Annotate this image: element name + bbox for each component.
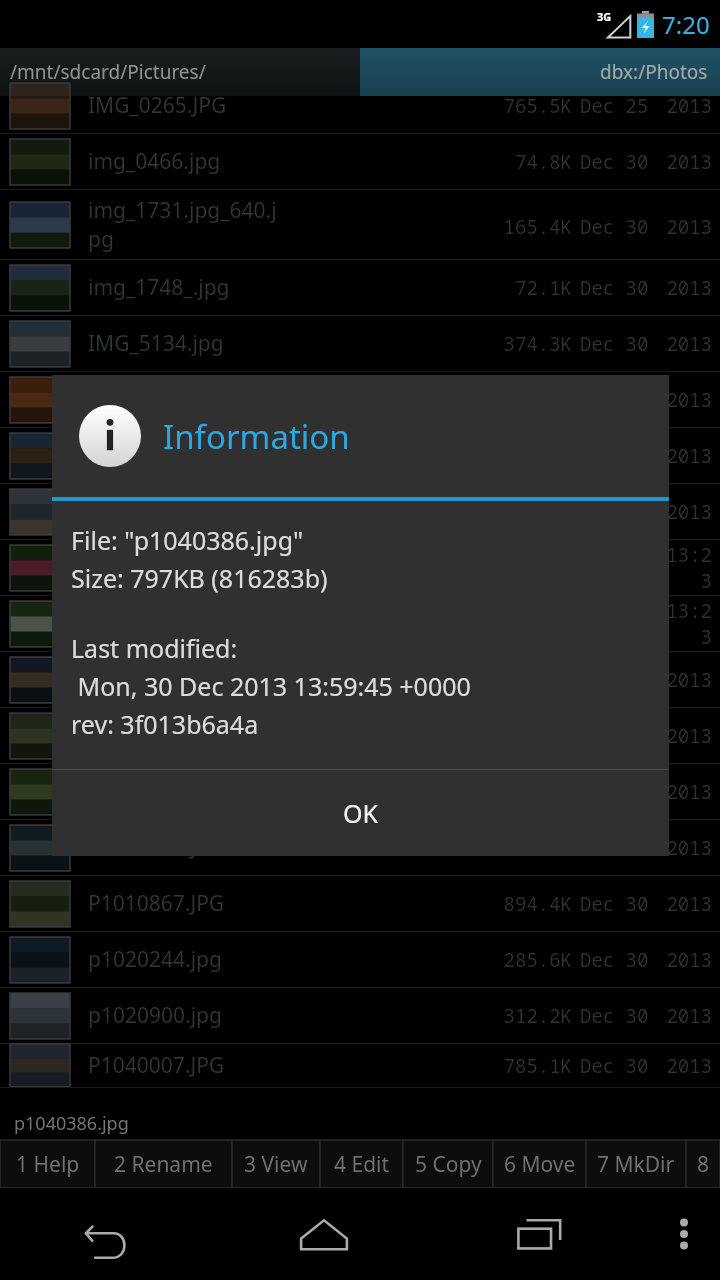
staticText: P1010867.JPG (88, 889, 225, 918)
button[interactable]: P1000456.JPG (0, 708, 720, 763)
button[interactable]: 6 Move (493, 1140, 586, 1188)
staticText: IMG_5522.jpg (88, 553, 224, 582)
staticText: Dec 30 (580, 214, 654, 240)
staticText: 6 Move (504, 1150, 576, 1179)
button[interactable]: Home (216, 1188, 432, 1280)
staticText: 2013 (658, 947, 712, 973)
staticText: Information (163, 414, 350, 459)
button[interactable]: 5 Copy (403, 1140, 493, 1188)
staticText: 13:23 (658, 598, 712, 650)
staticText: 165.4K (488, 214, 572, 240)
button[interactable]: 1 Help (0, 1140, 95, 1188)
button[interactable]: OK (52, 770, 669, 856)
button[interactable]: IMG_5134.jpg (0, 316, 720, 371)
staticText: 2013 (658, 275, 712, 301)
staticText: P1001011.JPG (88, 833, 225, 862)
button[interactable]: IMG_5522.jpg (0, 540, 720, 595)
staticText: Dec 30 (580, 947, 654, 973)
staticText: 72.1K (488, 275, 572, 301)
staticText: img_1748_.jpg (88, 273, 230, 302)
staticText: P1000456.JPG (88, 721, 225, 750)
staticText: 7 MkDir (597, 1150, 675, 1179)
staticText: 2013 (658, 723, 712, 749)
button[interactable]: P1000789.JPG (0, 764, 720, 819)
staticText: rev: 3f013b6a4a (71, 707, 259, 741)
button[interactable]: IMG_5216.jpg (0, 372, 720, 427)
staticText: 2013 (658, 891, 712, 917)
button[interactable]: IMG_5610.jpg (0, 596, 720, 651)
button[interactable]: 7 MkDir (586, 1140, 686, 1188)
staticText: 765.5K (488, 93, 572, 119)
staticText: Last modified: (71, 631, 238, 665)
staticText: 2013 (658, 443, 712, 469)
staticText: 2013 (658, 499, 712, 525)
staticText: 2013 (658, 149, 712, 175)
button[interactable]: Back (0, 1188, 216, 1280)
staticText: 5 Copy (415, 1150, 482, 1179)
staticText: p1020900.jpg (88, 1001, 222, 1030)
button[interactable]: 4 Edit (320, 1140, 403, 1188)
staticText: 2 Rename (114, 1150, 213, 1179)
button[interactable]: p1020900.jpg (0, 988, 720, 1043)
staticText: 785.1K (488, 1053, 572, 1079)
staticText: 2013 (658, 214, 712, 240)
staticText: dbx:/Photos (600, 59, 708, 85)
staticText: 2013 (658, 331, 712, 357)
button[interactable]: More options (648, 1188, 720, 1280)
staticText: 1 Help (16, 1150, 80, 1179)
staticText: p1020244.jpg (88, 945, 222, 974)
button[interactable]: P1040007.JPG (0, 1044, 720, 1087)
button[interactable]: img_0466.jpg (0, 134, 720, 189)
staticText: 894.4K (488, 891, 572, 917)
staticText: Mon, 30 Dec 2013 13:59:45 +0000 (71, 669, 471, 703)
staticText: 13:23 (658, 542, 712, 594)
button[interactable]: /mnt/sdcard/Pictures/ (0, 48, 360, 96)
staticText: 2013 (658, 779, 712, 805)
staticText: Dec 30 (580, 499, 654, 525)
button[interactable]: img_1748_.jpg (0, 260, 720, 315)
staticText: 4 Edit (334, 1150, 390, 1179)
button[interactable]: 2 Rename (95, 1140, 232, 1188)
staticText: 312.2K (488, 1003, 572, 1029)
staticText: 2013 (658, 667, 712, 693)
button[interactable]: 8 (686, 1140, 720, 1188)
staticText: 333.1K (488, 499, 572, 525)
staticText: 2013 (658, 93, 712, 119)
staticText: Dec 25 (580, 93, 654, 119)
button[interactable]: P1001011.JPG (0, 820, 720, 875)
button[interactable]: IMG_5320.jpg (0, 428, 720, 483)
button[interactable]: P1010867.JPG (0, 876, 720, 931)
staticText: Dec 30 (580, 331, 654, 357)
staticText: P1040007.JPG (88, 1051, 225, 1080)
staticText: 2013 (658, 1003, 712, 1029)
button[interactable]: IMG_0265.JPG (0, 78, 720, 133)
staticText: IMG_0265.JPG (88, 91, 227, 120)
staticText: IMG_5216.jpg (88, 385, 224, 414)
button[interactable]: P1000123.JPG (0, 652, 720, 707)
button[interactable]: p1020244.jpg (0, 932, 720, 987)
button[interactable]: dbx:/Photos (360, 48, 720, 96)
staticText: 74.8K (488, 149, 572, 175)
staticText: Dec 30 (580, 275, 654, 301)
button[interactable]: img_1731.jpg_640.j (0, 190, 720, 259)
staticText: Dec 30 (580, 835, 654, 861)
staticText: /mnt/sdcard/Pictures/ (10, 59, 206, 85)
button[interactable]: IMG_5411.jpg (0, 484, 720, 539)
button[interactable]: 3 View (232, 1140, 320, 1188)
staticText: P1000123.JPG (88, 665, 225, 694)
staticText: Dec 30 (580, 1053, 654, 1079)
button[interactable]: Recent apps (432, 1188, 648, 1280)
